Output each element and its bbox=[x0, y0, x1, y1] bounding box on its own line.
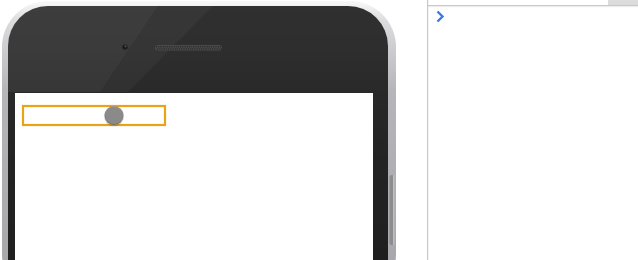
button[interactable]: Phone preview bbox=[0, 0, 638, 260]
button[interactable]: Slider bbox=[0, 0, 638, 260]
other: Inspector panel bbox=[0, 0, 638, 260]
button[interactable]: Expand bbox=[0, 0, 638, 260]
